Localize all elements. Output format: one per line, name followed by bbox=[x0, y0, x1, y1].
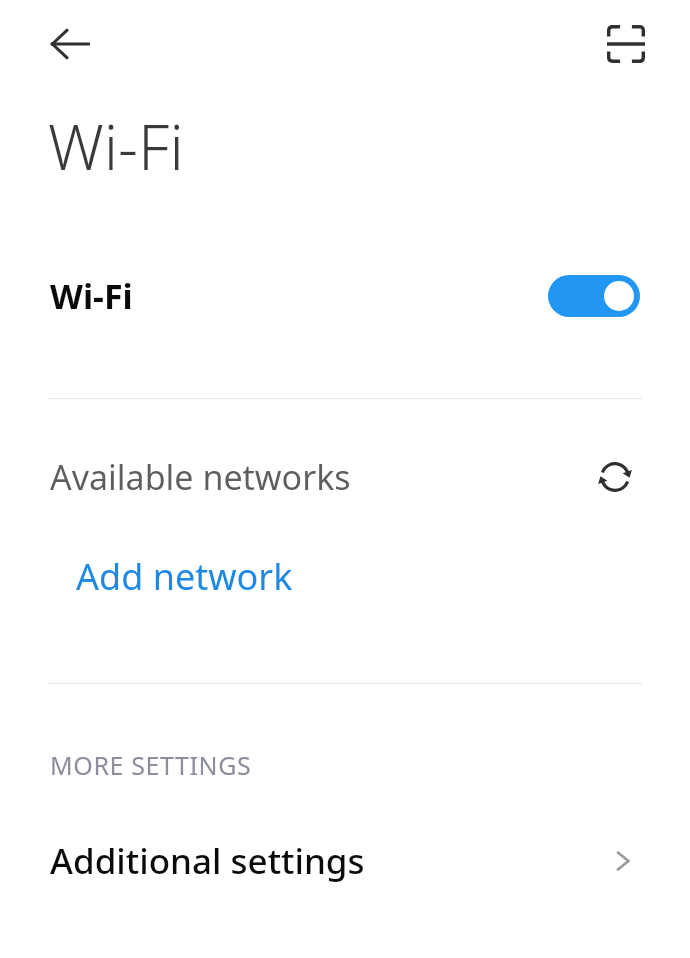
button[interactable]: Refresh bbox=[588, 450, 642, 504]
button[interactable]: Add network bbox=[0, 540, 690, 612]
staticText: Available networks bbox=[50, 454, 351, 500]
staticText: Additional settings bbox=[50, 837, 365, 885]
staticText: Add network bbox=[76, 552, 293, 601]
button[interactable]: Back bbox=[34, 8, 106, 80]
button[interactable]: Wi-Fi bbox=[0, 258, 690, 334]
button[interactable]: Additional settings bbox=[0, 820, 690, 902]
staticText: MORE SETTINGS bbox=[50, 748, 252, 782]
staticText: Wi-Fi bbox=[50, 273, 133, 319]
button[interactable]: Scan QR code bbox=[590, 8, 662, 80]
staticText: Wi-Fi bbox=[48, 104, 184, 188]
